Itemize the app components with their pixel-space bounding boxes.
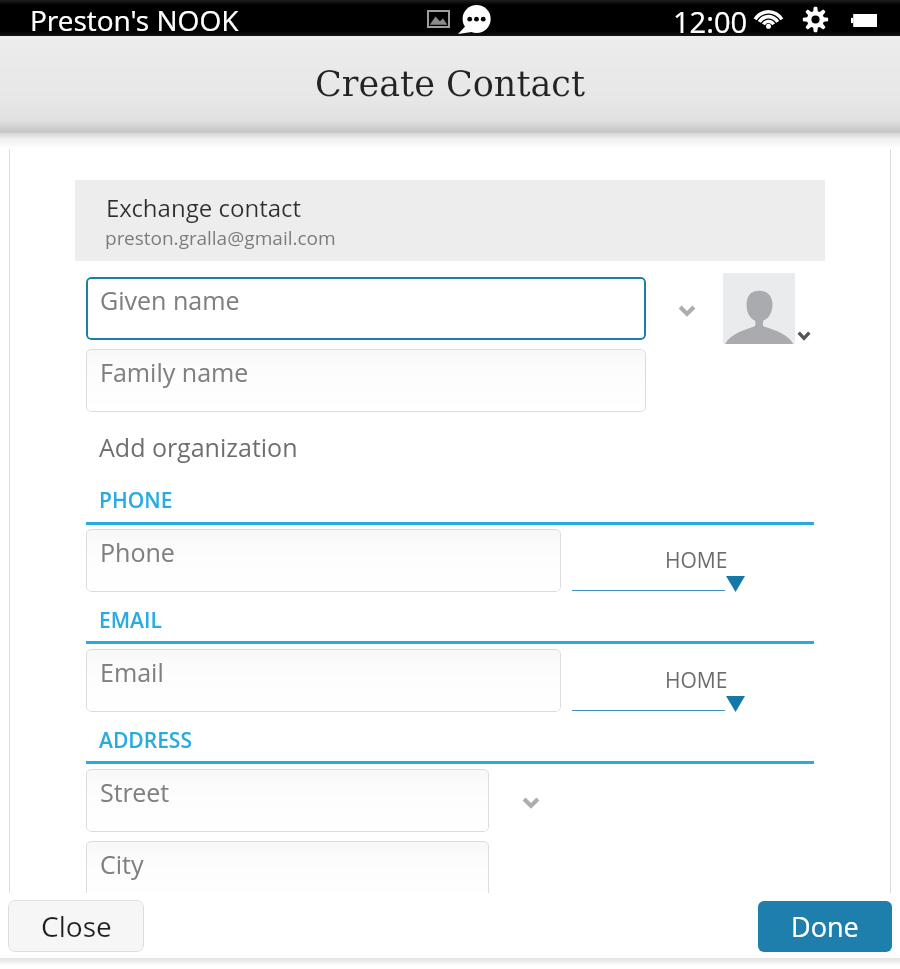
staticText: preston.gralla@gmail.com [105, 225, 336, 251]
button[interactable]: Phone [86, 529, 561, 592]
button[interactable]: City [86, 841, 489, 904]
button[interactable]: Photo options [797, 331, 811, 340]
staticText: Add organization [99, 430, 298, 464]
button[interactable]: Email [86, 649, 561, 712]
staticText: Exchange contact [106, 191, 301, 224]
staticText: Email [100, 655, 164, 689]
staticText: PHONE [99, 486, 173, 515]
staticText: HOME [665, 666, 728, 695]
button[interactable]: Exchange contact [75, 180, 825, 261]
button[interactable]: Family name [86, 349, 646, 412]
staticText: 12:00 [673, 2, 748, 38]
staticText: Create Contact [315, 64, 585, 105]
button[interactable]: Contact photo [723, 273, 795, 344]
button[interactable]: HOME [572, 529, 747, 592]
staticText: HOME [665, 546, 728, 575]
staticText: EMAIL [99, 606, 162, 635]
button[interactable]: Address type [522, 797, 540, 808]
button[interactable]: Add organization [99, 430, 298, 464]
button[interactable]: Street [86, 769, 489, 832]
staticText: Street [100, 775, 170, 809]
button[interactable]: Given name [86, 277, 646, 340]
staticText: ADDRESS [99, 726, 192, 755]
button[interactable]: Close [8, 900, 144, 952]
staticText: Close [41, 907, 112, 945]
staticText: Done [791, 908, 859, 945]
staticText: Given name [100, 283, 240, 317]
staticText: Preston's NOOK [30, 1, 239, 37]
staticText: Family name [100, 355, 249, 389]
button[interactable]: HOME [572, 649, 747, 712]
button[interactable]: Name details [678, 305, 696, 316]
button[interactable]: Done [758, 901, 892, 952]
staticText: Phone [100, 535, 175, 569]
staticText: City [100, 847, 144, 881]
